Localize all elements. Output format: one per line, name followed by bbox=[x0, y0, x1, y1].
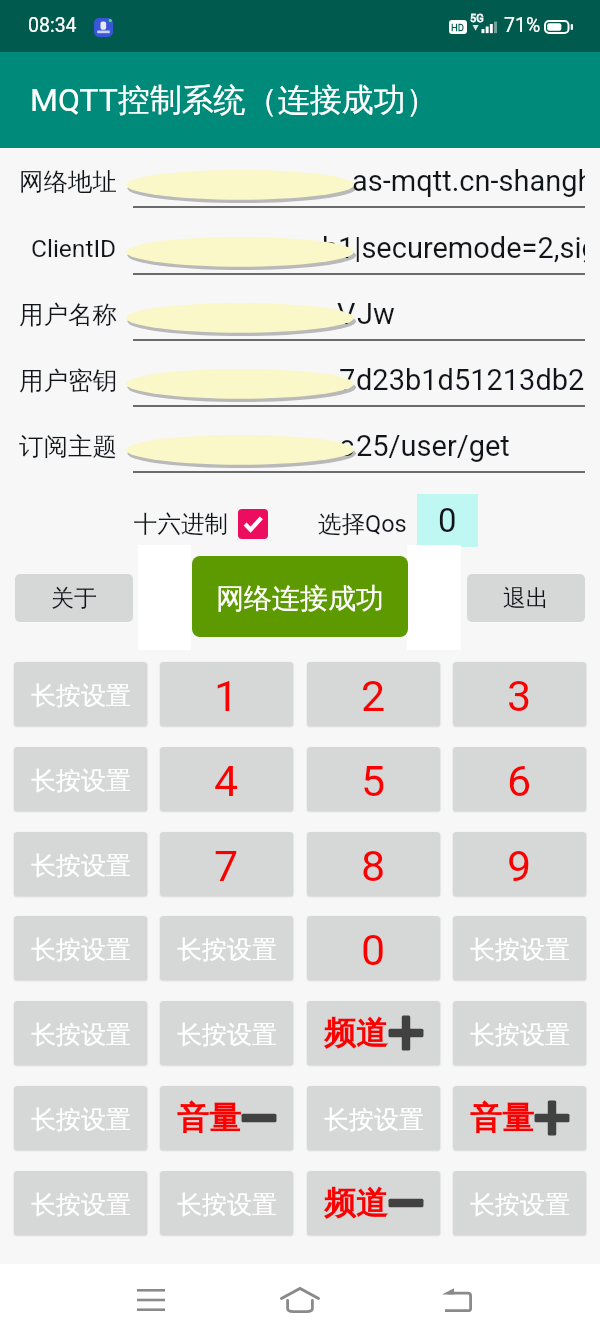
staticText: 长按设置 bbox=[31, 1104, 131, 1135]
staticText: 0 bbox=[361, 925, 386, 975]
staticText: 25/user/get bbox=[356, 429, 510, 463]
staticText: 用户密钥 bbox=[19, 365, 117, 396]
button[interactable]: 0 bbox=[417, 494, 478, 547]
button[interactable]: 4 bbox=[160, 747, 293, 811]
button[interactable]: 长按设置 bbox=[160, 1001, 293, 1065]
staticText: 订阅主题 bbox=[19, 431, 117, 462]
button[interactable]: 频道 bbox=[307, 1171, 440, 1235]
button[interactable]: 7 bbox=[160, 832, 293, 896]
staticText: 71% bbox=[504, 14, 541, 37]
button[interactable]: 长按设置 bbox=[453, 1171, 586, 1235]
staticText: 网络地址 bbox=[19, 166, 117, 197]
staticText: 8 bbox=[361, 841, 386, 891]
staticText: HD bbox=[451, 22, 465, 33]
staticText: 音量 bbox=[177, 1098, 241, 1138]
staticText: 3 bbox=[507, 671, 532, 721]
staticText: 用户名称 bbox=[19, 299, 117, 330]
button[interactable]: 长按设置 bbox=[14, 662, 147, 726]
staticText: V bbox=[337, 297, 356, 331]
staticText: 退出 bbox=[503, 584, 549, 613]
button[interactable]: 长按设置 bbox=[14, 916, 147, 980]
staticText: ClientID bbox=[31, 234, 117, 263]
staticText: MQTT控制系统（连接成功） bbox=[30, 80, 438, 120]
button[interactable]: 0 bbox=[307, 916, 440, 980]
button[interactable]: 6 bbox=[453, 747, 586, 811]
button[interactable]: 长按设置 bbox=[14, 1171, 147, 1235]
button[interactable]: 9 bbox=[453, 832, 586, 896]
button[interactable]: 长按设置 bbox=[453, 1001, 586, 1065]
button[interactable]: Back bbox=[427, 1270, 487, 1330]
button[interactable]: 频道 bbox=[307, 1001, 440, 1065]
staticText: 长按设置 bbox=[324, 1104, 424, 1135]
button[interactable]: 音量 bbox=[160, 1086, 293, 1150]
staticText: 08:34 bbox=[28, 14, 77, 37]
staticText: 2 bbox=[361, 671, 386, 721]
button[interactable]: 长按设置 bbox=[14, 1001, 147, 1065]
staticText: 长按设置 bbox=[31, 680, 131, 711]
staticText: b bbox=[322, 231, 339, 265]
button[interactable]: 关于 bbox=[15, 574, 133, 622]
staticText: 长按设置 bbox=[31, 934, 131, 965]
button[interactable]: 2 bbox=[307, 662, 440, 726]
button[interactable]: 退出 bbox=[467, 574, 585, 622]
button[interactable]: 1 bbox=[160, 662, 293, 726]
staticText: Jw bbox=[357, 297, 395, 331]
button[interactable]: 长按设置 bbox=[307, 1086, 440, 1150]
button[interactable]: 3 bbox=[453, 662, 586, 726]
button[interactable]: 长按设置 bbox=[14, 1086, 147, 1150]
staticText: 频道 bbox=[324, 1013, 388, 1053]
staticText: 关于 bbox=[51, 584, 97, 613]
button[interactable]: 长按设置 bbox=[453, 916, 586, 980]
staticText: 频道 bbox=[324, 1183, 388, 1223]
button[interactable]: 十六进制 checkbox bbox=[238, 509, 268, 539]
staticText: 0 bbox=[438, 501, 457, 540]
button[interactable]: 8 bbox=[307, 832, 440, 896]
staticText: 十六进制 bbox=[134, 509, 228, 539]
staticText: c bbox=[339, 429, 355, 463]
button[interactable]: Home bbox=[270, 1270, 330, 1330]
staticText: 选择Qos bbox=[318, 509, 407, 539]
staticText: 长按设置 bbox=[177, 1189, 277, 1220]
staticText: 长按设置 bbox=[177, 1019, 277, 1050]
staticText: 9 bbox=[507, 841, 532, 891]
button[interactable]: 长按设置 bbox=[14, 832, 147, 896]
staticText: 音量 bbox=[470, 1098, 534, 1138]
button[interactable]: 长按设置 bbox=[160, 1171, 293, 1235]
staticText: 长按设置 bbox=[177, 934, 277, 965]
button[interactable]: Recents bbox=[121, 1270, 181, 1330]
staticText: 5G bbox=[470, 12, 484, 25]
staticText: 长按设置 bbox=[470, 934, 570, 965]
staticText: 长按设置 bbox=[31, 1189, 131, 1220]
staticText: 长按设置 bbox=[31, 1019, 131, 1050]
staticText: 长按设置 bbox=[470, 1189, 570, 1220]
button[interactable]: 网络连接成功 bbox=[192, 556, 408, 637]
staticText: 长按设置 bbox=[31, 765, 131, 796]
staticText: 长按设置 bbox=[470, 1019, 570, 1050]
staticText: 4 bbox=[214, 756, 239, 806]
staticText: d23b1d51213db26ef9a bbox=[356, 363, 585, 397]
button[interactable]: 音量 bbox=[453, 1086, 586, 1150]
staticText: 6 bbox=[507, 756, 532, 806]
staticText: 1|securemode=2,signmethod,timestamp bbox=[338, 231, 585, 265]
button[interactable]: 长按设置 bbox=[14, 747, 147, 811]
button[interactable]: 5 bbox=[307, 747, 440, 811]
staticText: 1 bbox=[214, 671, 239, 721]
staticText: 7 bbox=[339, 363, 356, 397]
staticText: 长按设置 bbox=[31, 850, 131, 881]
staticText: 网络连接成功 bbox=[216, 581, 384, 616]
button[interactable]: 长按设置 bbox=[160, 916, 293, 980]
staticText: as-mqtt.cn-shanghai.aliyuncs.com bbox=[352, 164, 585, 198]
staticText: 7 bbox=[214, 841, 239, 891]
staticText: 5 bbox=[361, 756, 386, 806]
